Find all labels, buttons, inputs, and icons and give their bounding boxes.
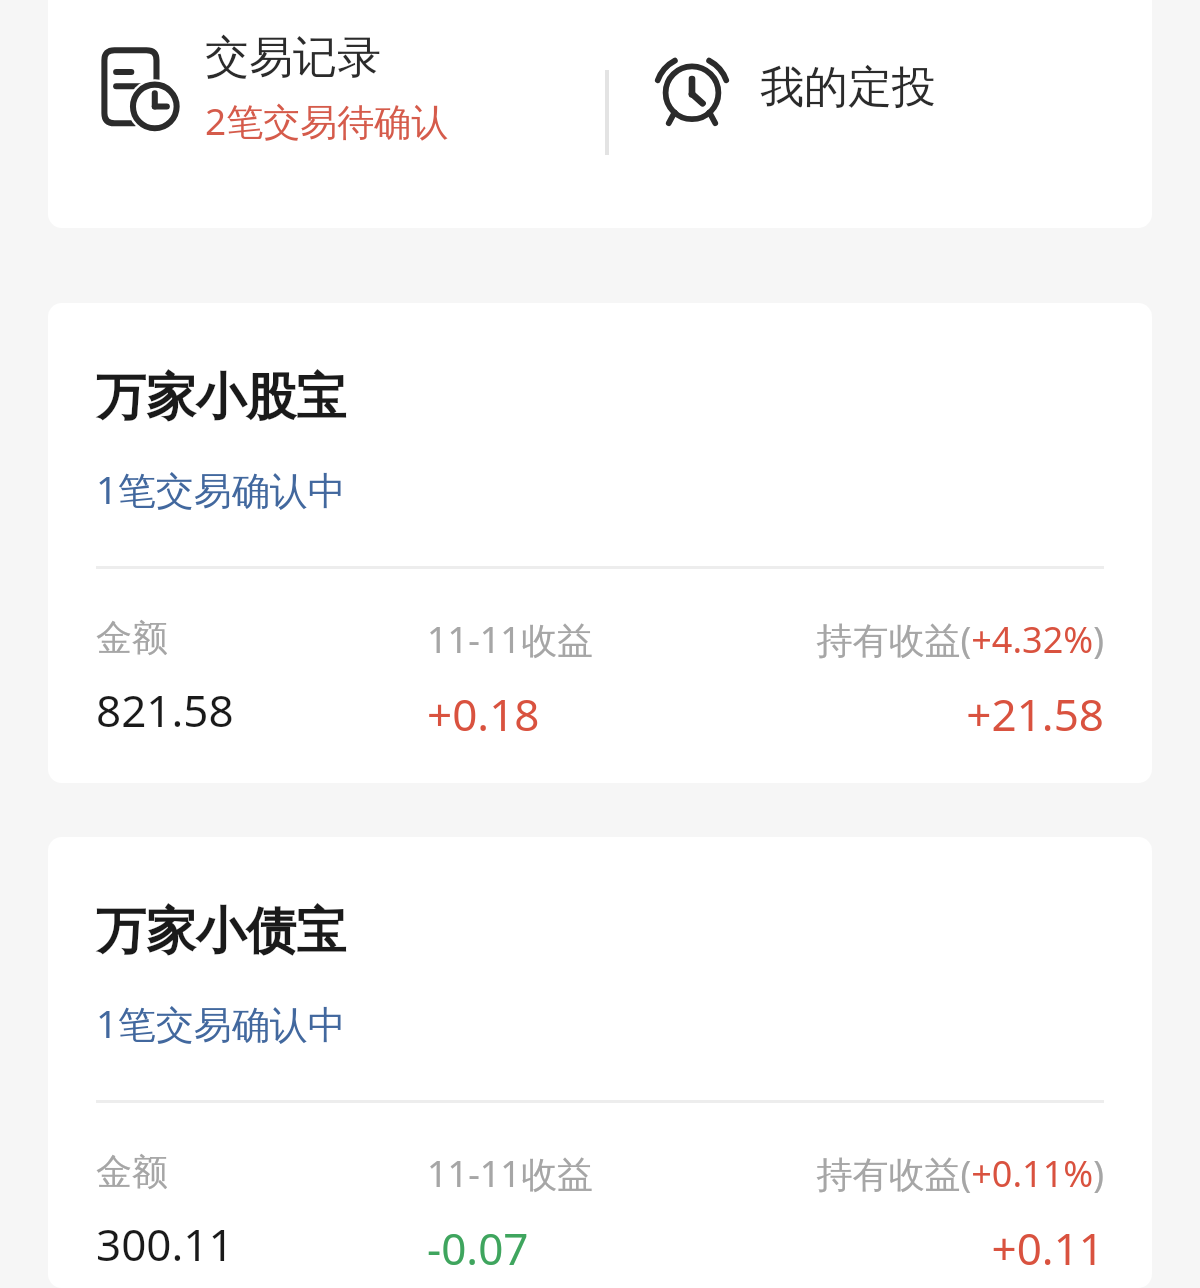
staticText: 11-11收益	[427, 1149, 593, 1198]
staticText: 万家小债宝	[96, 900, 346, 963]
staticText: 1笔交易确认中	[96, 997, 346, 1049]
button[interactable]: 交易记录	[48, 0, 605, 175]
other: 我的定投	[652, 48, 732, 128]
staticText: 万家小股宝	[96, 366, 346, 429]
button[interactable]: 我的定投	[609, 0, 1152, 175]
staticText: +21.58	[966, 684, 1104, 744]
staticText: 11-11收益	[427, 615, 593, 664]
staticText: 持有收益(+4.32%)	[816, 615, 1104, 664]
staticText: 2笔交易待确认	[205, 95, 449, 146]
staticText: 我的定投	[760, 60, 936, 115]
staticText: 持有收益(+0.11%)	[816, 1149, 1104, 1198]
staticText: +0.18	[427, 684, 540, 744]
staticText: 交易记录	[205, 30, 381, 85]
staticText: 金额	[96, 1149, 168, 1194]
staticText: -0.07	[427, 1218, 529, 1278]
staticText: 300.11	[96, 1214, 234, 1274]
staticText: 金额	[96, 615, 168, 660]
button[interactable]: 万家小股宝	[48, 303, 1152, 783]
staticText: 821.58	[96, 680, 234, 740]
staticText: 1笔交易确认中	[96, 463, 346, 515]
staticText: +0.11	[991, 1218, 1104, 1278]
button[interactable]: 万家小债宝	[48, 837, 1152, 1288]
